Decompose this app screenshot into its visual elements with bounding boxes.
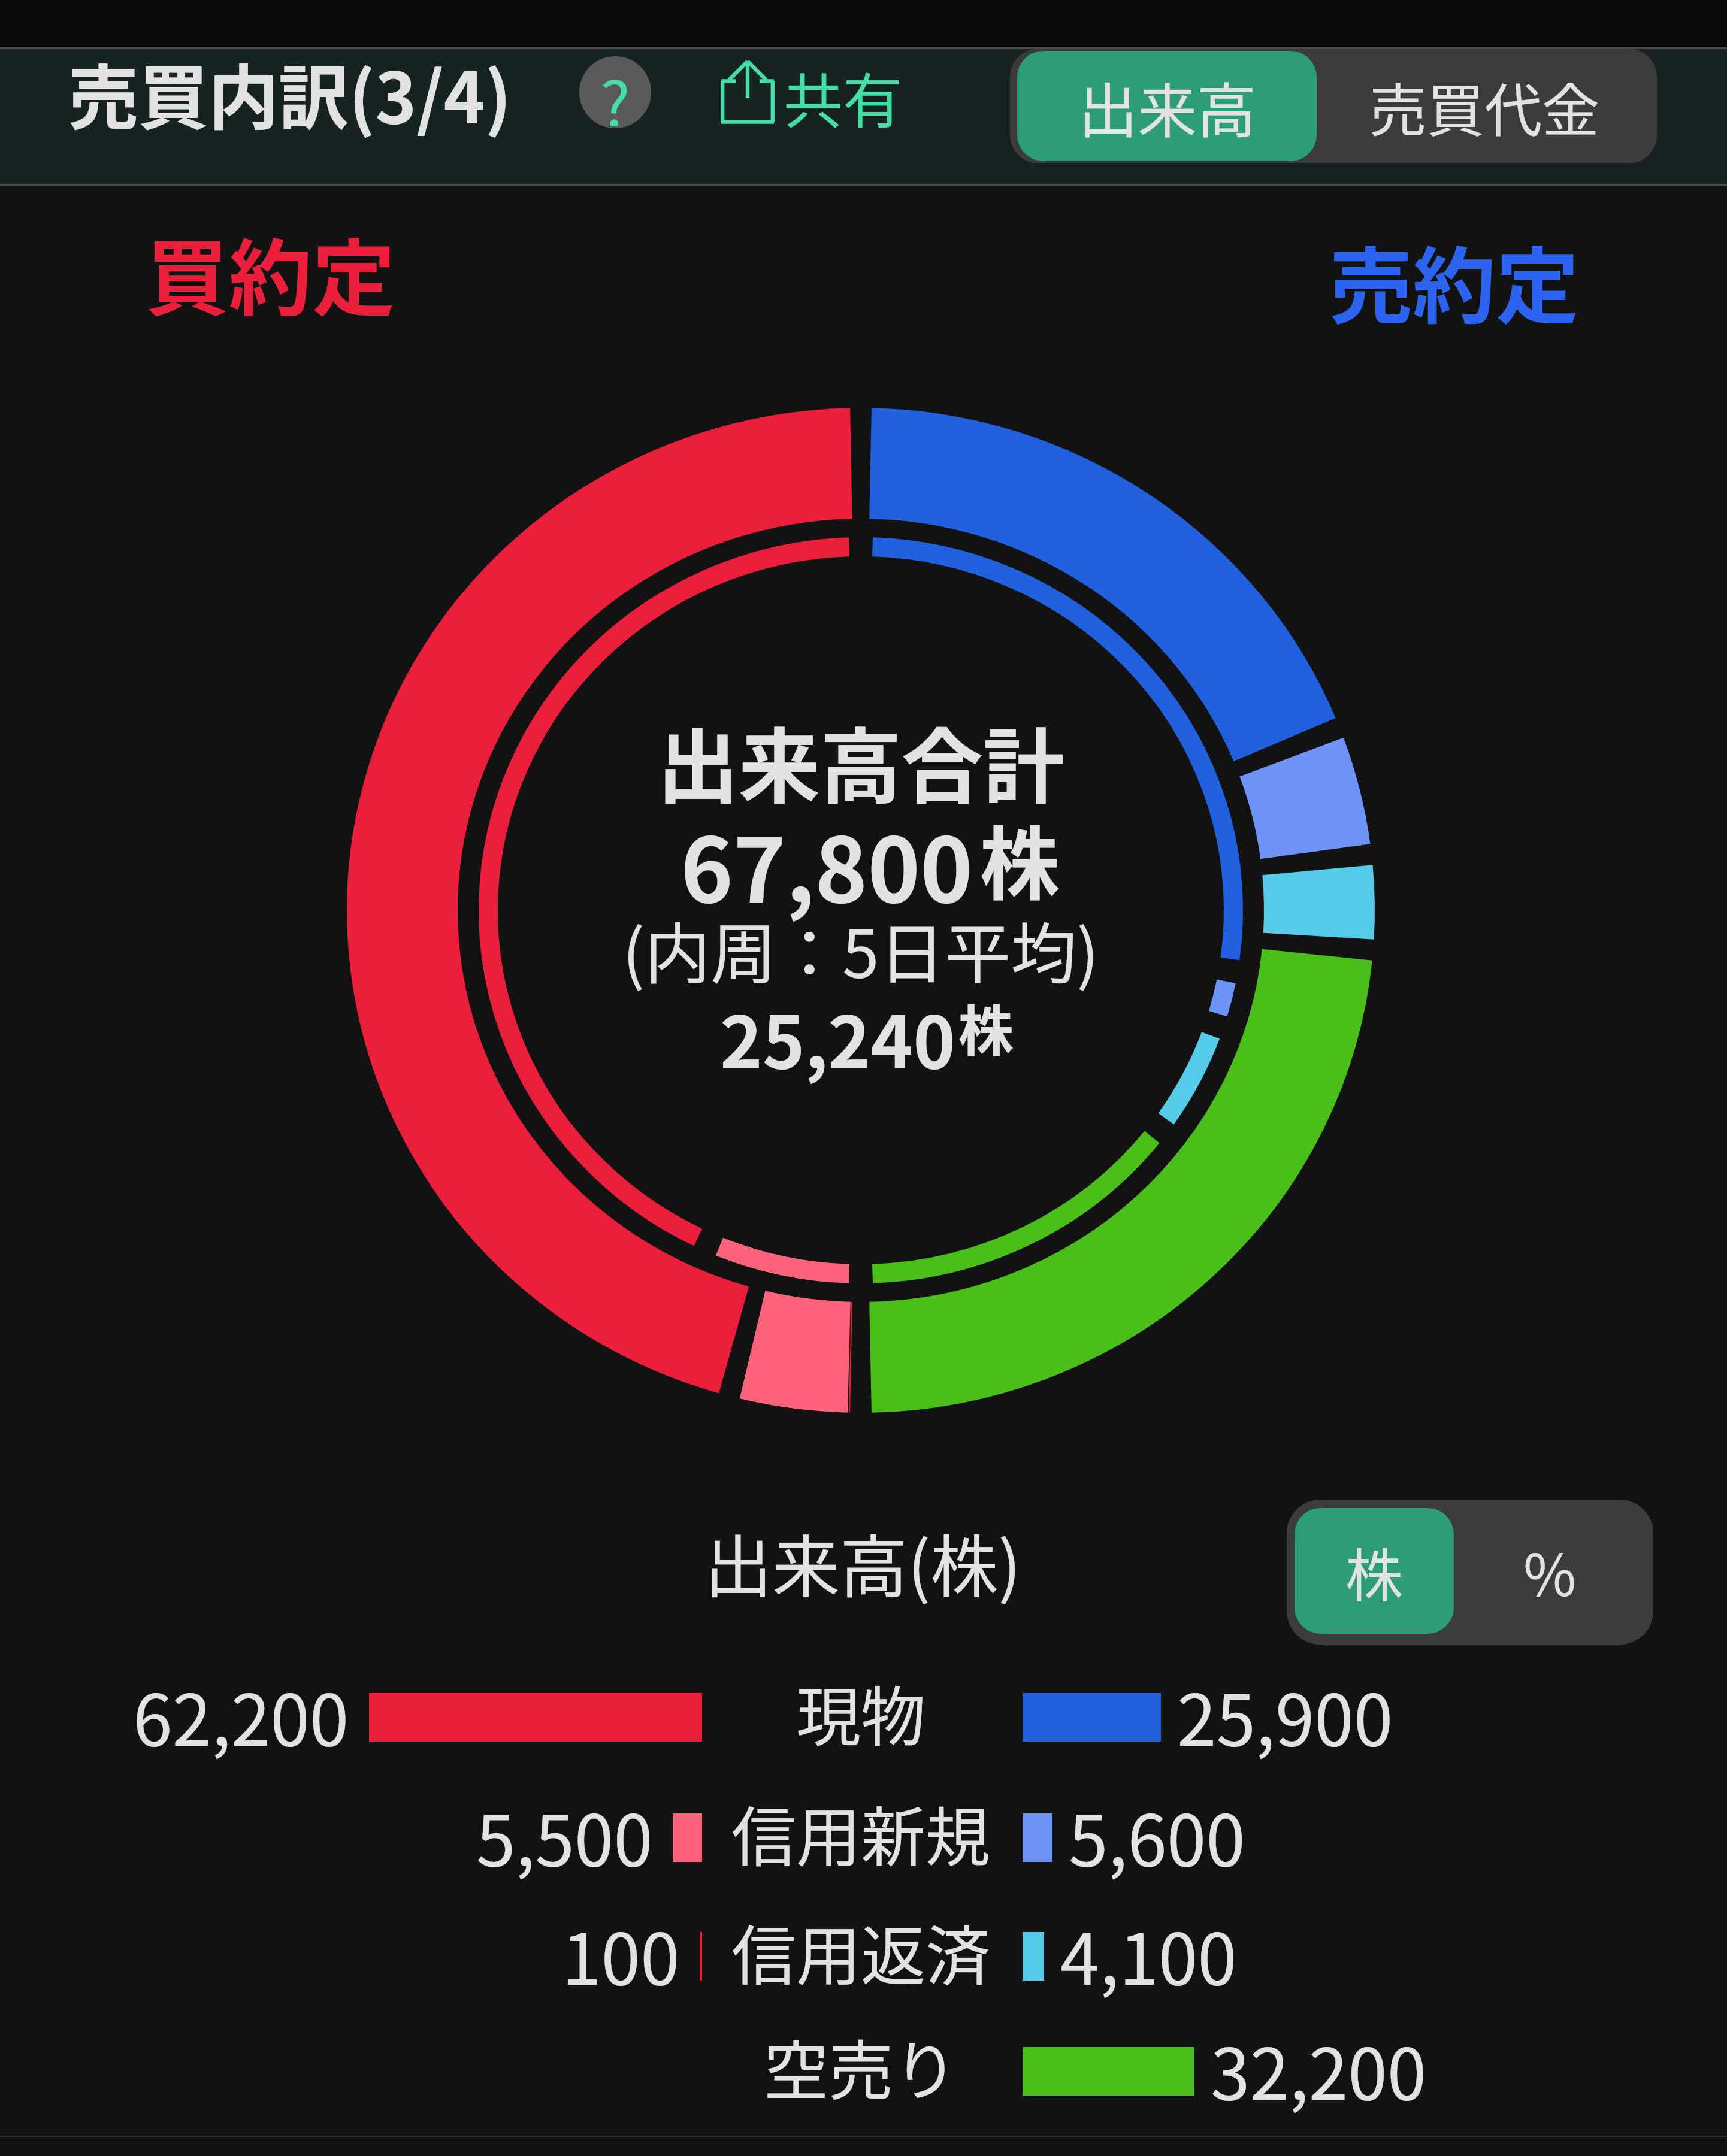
staticText: 出来高 [1078,63,1256,149]
staticText: 25,900 [1177,1664,1393,1766]
button[interactable]: 株 [1295,1508,1454,1634]
staticText: 62,200 [133,1664,349,1766]
staticText: 現物 [796,1666,926,1759]
staticText: 100 [562,1903,680,2005]
staticText: 売約定 [1329,220,1579,340]
button[interactable]: 共有 [710,50,908,134]
staticText: 売買内訳(3/4) [68,42,512,143]
staticText: 買約定 [146,212,395,332]
button[interactable]: % [1454,1508,1646,1634]
button[interactable]: 信用新規 [0,1779,1727,1896]
staticText: 売買代金 [1369,65,1599,148]
staticText: 5,500 [476,1784,653,1886]
button[interactable]: 現物 [0,1658,1727,1776]
staticText: 25,240 [720,985,955,1089]
staticText: 株 [1345,1530,1403,1613]
staticText: 空売り [764,2019,958,2113]
staticText: 信用返済 [731,1904,991,1998]
staticText: 出来高(株) [704,1513,1021,1611]
button[interactable]: 出来高 [1017,51,1317,161]
button[interactable]: 空売り [0,2012,1727,2130]
button[interactable]: 売買代金 [1317,51,1652,161]
staticText: 株 [980,801,1060,916]
button[interactable]: 信用返済 [0,1897,1727,2015]
button[interactable]: ヘルプ [579,56,651,128]
staticText: 信用新規 [731,1786,991,1879]
staticText: ? [600,56,630,126]
staticText: 出来高合計 [657,702,1064,820]
staticText: (内周：5日平均) [622,901,1099,997]
staticText: 共有 [784,54,902,138]
staticText: 株 [958,987,1014,1067]
staticText: 4,100 [1060,1903,1237,2005]
staticText: 32,200 [1211,2018,1427,2120]
staticText: 67,800 [680,799,973,928]
staticText: % [1523,1530,1577,1613]
staticText: 5,600 [1069,1784,1245,1886]
